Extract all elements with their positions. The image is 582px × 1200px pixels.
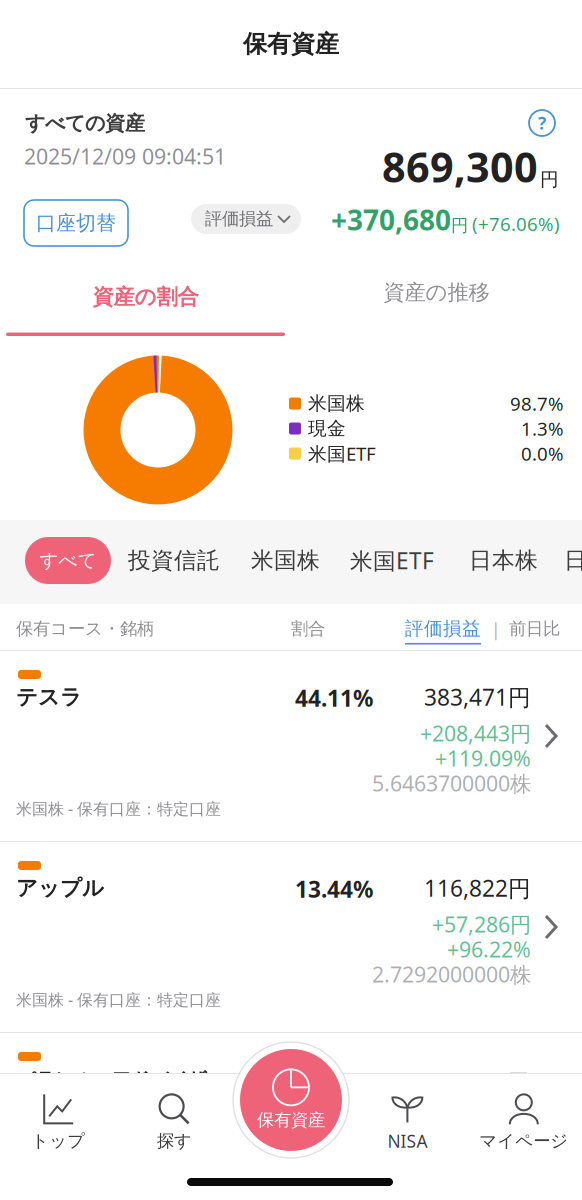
staticText: 44.11% bbox=[295, 683, 373, 713]
button[interactable]: 評価損益 bbox=[405, 617, 481, 644]
staticText: ? bbox=[538, 111, 546, 134]
staticText: 2025/12/09 09:04:51 bbox=[24, 142, 226, 170]
button[interactable]: 米国ETF bbox=[350, 537, 434, 584]
button[interactable]: 探す bbox=[116, 1079, 233, 1165]
staticText: 資産の推移 bbox=[383, 279, 489, 306]
staticText: 869,300 bbox=[382, 139, 538, 194]
staticText: 98.7% bbox=[510, 391, 564, 416]
staticText: 5.6463700000株 bbox=[372, 769, 531, 797]
button[interactable]: すべて bbox=[25, 537, 111, 584]
staticText: 保有資産 bbox=[257, 1109, 325, 1131]
button[interactable]: 資産の割合 bbox=[0, 271, 291, 336]
staticText: テスラ bbox=[16, 684, 82, 710]
button[interactable]: 米国株 bbox=[251, 537, 320, 584]
staticText: 日 bbox=[564, 547, 582, 574]
button[interactable]: 投資信託 bbox=[128, 537, 220, 584]
staticText: 米国株 - 保有口座：特定口座 bbox=[16, 798, 221, 819]
staticText: すべて bbox=[39, 549, 96, 572]
staticText: 円 bbox=[540, 168, 559, 191]
staticText: 米国ETF bbox=[350, 545, 434, 575]
staticText: 13.44% bbox=[295, 874, 373, 904]
staticText: 資産の割合 bbox=[92, 284, 198, 310]
staticText: 保有コース・銘柄 bbox=[16, 618, 154, 639]
staticText: 50,000円 bbox=[442, 1067, 529, 1095]
staticText: +119.09% bbox=[435, 744, 531, 772]
staticText: 投資信託 bbox=[128, 547, 220, 574]
button[interactable]: 前日比 bbox=[509, 618, 560, 639]
staticText: トップ bbox=[31, 1130, 85, 1152]
staticText: 現金 bbox=[308, 417, 346, 440]
staticText: マイページ bbox=[479, 1130, 568, 1152]
button[interactable]: 資産の推移 bbox=[291, 271, 582, 336]
staticText: +96.22% bbox=[447, 935, 531, 963]
staticText: | bbox=[491, 618, 501, 641]
button[interactable]: アップル bbox=[0, 842, 582, 1032]
staticText: 2.7292000000株 bbox=[372, 960, 531, 988]
staticText: 保有資産 bbox=[243, 29, 339, 59]
staticText: 口座切替 bbox=[36, 211, 116, 235]
button[interactable]: NISA bbox=[349, 1079, 466, 1165]
staticText: 米国株 bbox=[308, 392, 365, 415]
button[interactable]: 日 bbox=[564, 537, 582, 584]
staticText: +57,286円 bbox=[432, 910, 531, 938]
button[interactable]: 口座切替 bbox=[24, 200, 128, 246]
button[interactable]: 評価損益 bbox=[191, 204, 301, 234]
staticText: アップル bbox=[16, 875, 104, 901]
staticText: 円 bbox=[451, 215, 468, 236]
staticText: 116,822円 bbox=[424, 873, 531, 903]
button[interactable]: 日本株 bbox=[469, 537, 538, 584]
staticText: すべての資産 bbox=[25, 111, 145, 136]
staticText: 評価損益 bbox=[405, 617, 481, 640]
staticText: 探す bbox=[157, 1130, 192, 1152]
staticText: 日本株 bbox=[469, 547, 538, 574]
button[interactable]: トップ bbox=[0, 1079, 116, 1165]
staticText: 1.3% bbox=[521, 416, 564, 441]
staticText: 米国株 - 保有口座：特定口座 bbox=[16, 989, 221, 1010]
staticText: パラレル・アドバイザーズ bbox=[17, 1068, 245, 1091]
staticText: 0.0% bbox=[521, 441, 564, 466]
staticText: 米国株 bbox=[251, 547, 320, 574]
button[interactable]: テスラ bbox=[0, 651, 582, 841]
button[interactable]: マイページ bbox=[466, 1079, 582, 1165]
staticText: (+76.06%) bbox=[472, 211, 560, 236]
staticText: 評価損益 bbox=[205, 208, 273, 229]
staticText: NISA bbox=[387, 1129, 427, 1152]
staticText: 前日比 bbox=[509, 618, 560, 639]
staticText: 383,471円 bbox=[424, 682, 531, 712]
staticText: +208,443円 bbox=[420, 719, 531, 747]
staticText: +370,680 bbox=[331, 201, 451, 238]
staticText: 米国ETF bbox=[308, 441, 376, 466]
staticText: 割合 bbox=[291, 618, 325, 639]
button[interactable]: ヘルプ bbox=[525, 106, 559, 140]
